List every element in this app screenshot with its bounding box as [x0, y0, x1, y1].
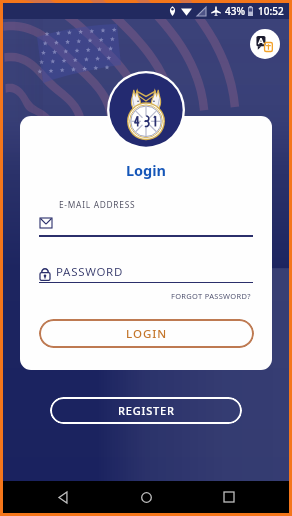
staticText: 10:52	[258, 4, 284, 18]
staticText: FORGOT PASSWORD?	[171, 291, 251, 301]
button[interactable]: LOGIN	[39, 319, 254, 348]
staticText: 43%	[225, 4, 245, 18]
button[interactable]: Home	[124, 481, 168, 513]
button[interactable]: REGISTER	[50, 397, 242, 424]
staticText: E-MAIL ADDRESS	[59, 199, 136, 210]
staticText: Login	[20, 160, 272, 180]
staticText: LOGIN	[126, 326, 168, 342]
staticText: REGISTER	[118, 403, 175, 418]
button[interactable]: FORGOT PASSWORD?	[168, 289, 254, 303]
button[interactable]: Back	[42, 481, 86, 513]
button[interactable]: Translate	[250, 29, 280, 59]
button[interactable]: Recents	[207, 481, 251, 513]
staticText: PASSWORD	[56, 264, 124, 280]
